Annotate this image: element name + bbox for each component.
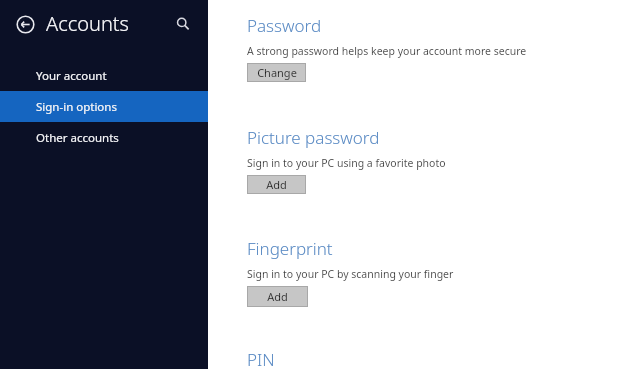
staticText: Password (247, 14, 322, 37)
staticText: Change (257, 65, 297, 80)
button[interactable]: Other accounts (0, 122, 208, 153)
button[interactable]: Your account (0, 60, 208, 91)
button[interactable]: Add (247, 175, 306, 194)
staticText: Add (266, 177, 287, 192)
button[interactable]: Change (247, 63, 306, 82)
button[interactable]: Add (247, 286, 308, 307)
staticText: PIN (247, 348, 275, 369)
staticText: Add (267, 289, 288, 304)
staticText: A strong password helps keep your accoun… (247, 44, 527, 58)
button[interactable]: Search (170, 11, 196, 37)
staticText: Accounts (46, 10, 129, 37)
staticText: Sign-in options (36, 99, 117, 115)
staticText: Sign in to your PC by scanning your fing… (247, 267, 454, 281)
staticText: Sign in to your PC using a favorite phot… (247, 156, 446, 170)
staticText: Fingerprint (247, 237, 333, 260)
button[interactable]: Back (12, 11, 38, 37)
staticText: Other accounts (36, 130, 119, 146)
button[interactable]: Sign-in options (0, 91, 208, 122)
staticText: Picture password (247, 126, 380, 149)
staticText: Your account (36, 68, 107, 84)
